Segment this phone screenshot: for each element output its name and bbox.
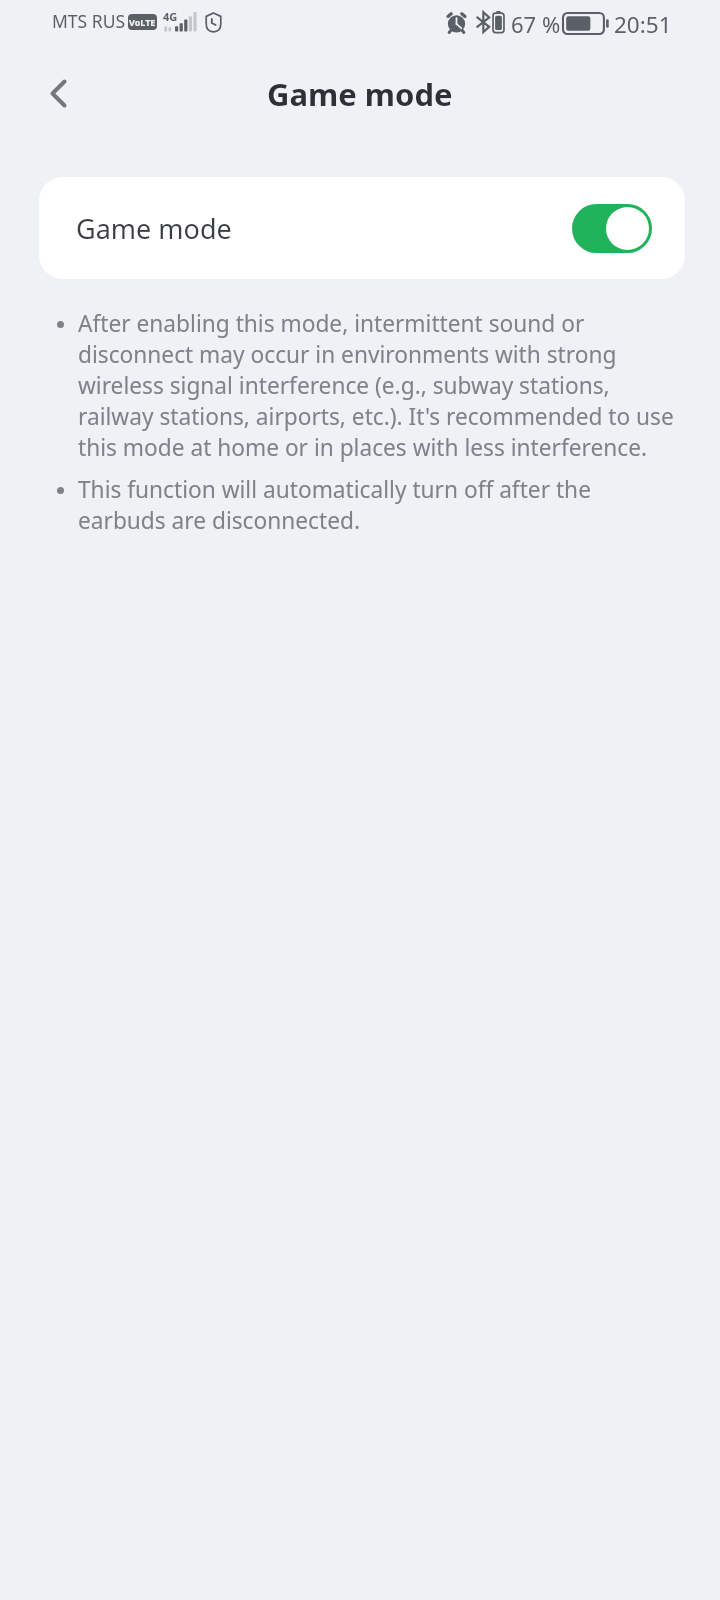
button[interactable]: Game mode <box>39 177 685 279</box>
staticText: This function will automatically turn of… <box>78 474 678 536</box>
button[interactable]: Back <box>28 63 88 123</box>
staticText: VoLTE <box>129 16 156 28</box>
staticText: 67 % <box>511 9 561 39</box>
staticText: After enabling this mode, intermittent s… <box>78 308 678 463</box>
staticText: MTS RUS <box>52 9 126 33</box>
staticText: 20:51 <box>614 9 672 40</box>
staticText: Game mode <box>267 73 453 115</box>
button[interactable]: Game mode switch <box>572 204 652 253</box>
staticText: Game mode <box>76 210 232 247</box>
staticText: 4G <box>163 9 178 24</box>
